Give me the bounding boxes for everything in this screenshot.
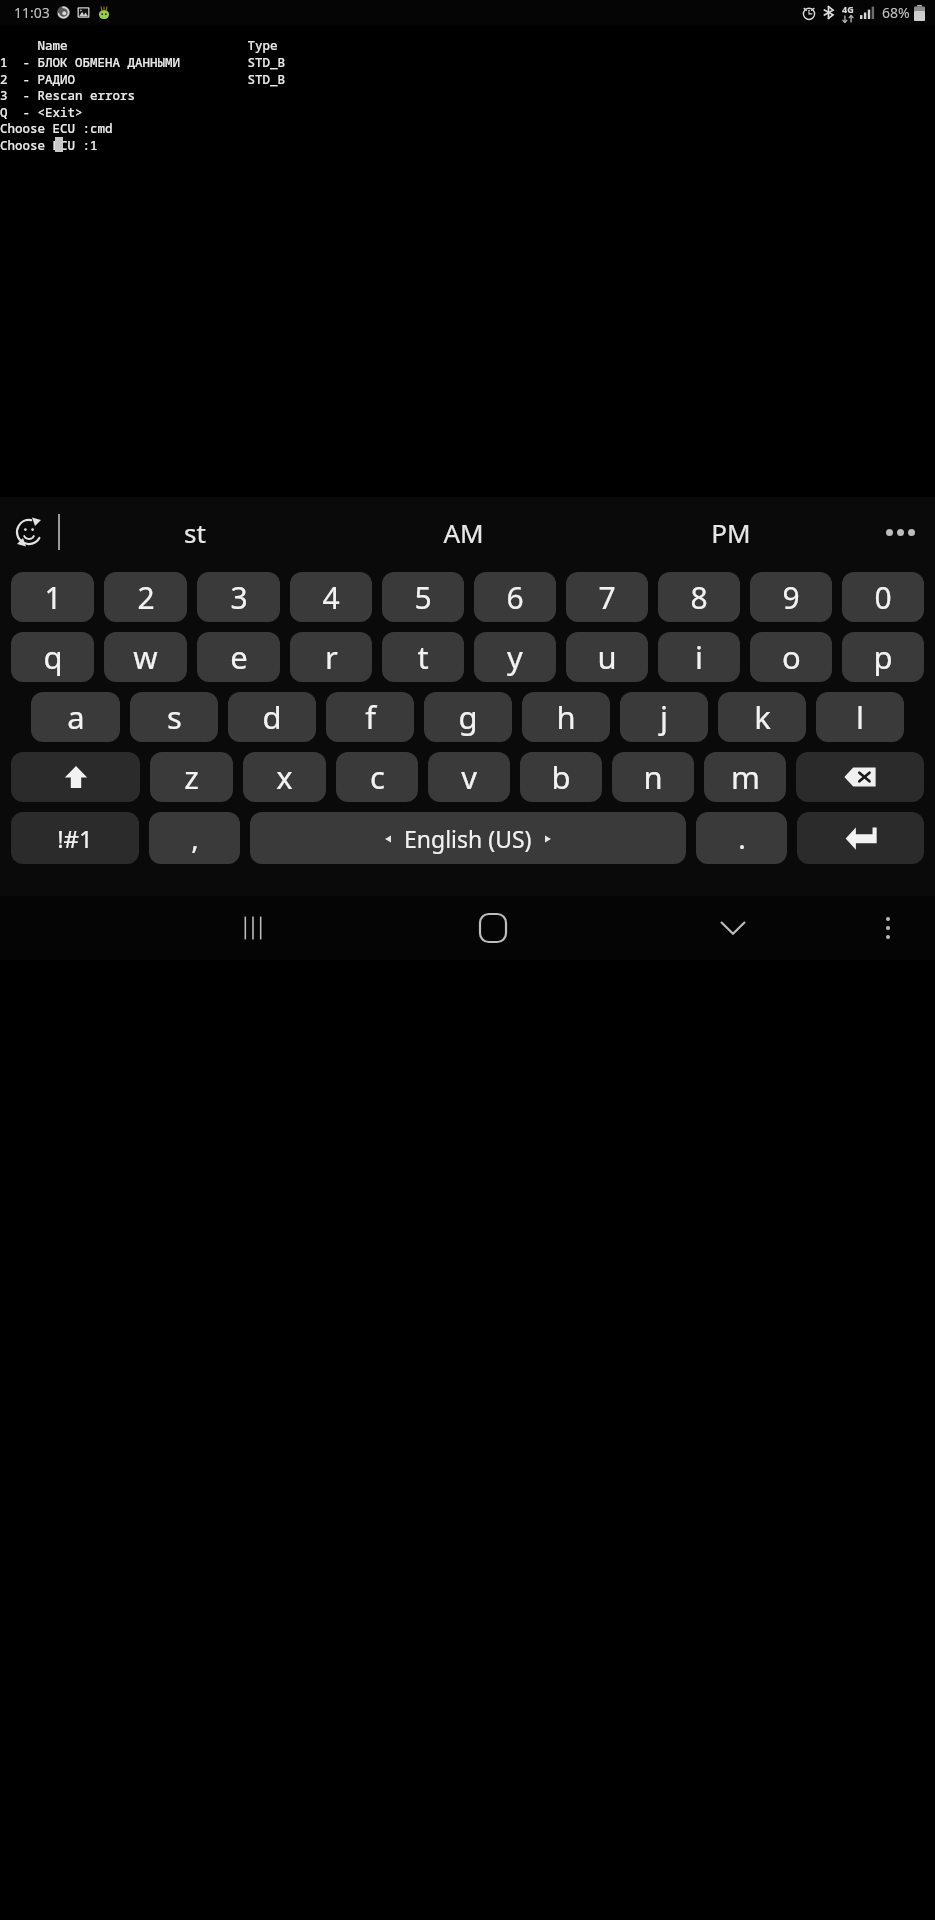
staticText: s <box>167 696 182 738</box>
button[interactable]: p <box>842 632 924 682</box>
staticText: l <box>856 696 864 738</box>
staticText: x <box>276 756 293 798</box>
button[interactable]: 6 <box>474 572 556 622</box>
staticText: 1 - БЛОК ОБМЕНА ДАННЫМИ <box>0 54 181 71</box>
button[interactable]: Emoji and settings <box>0 497 58 567</box>
button[interactable]: e <box>197 632 280 682</box>
staticText: k <box>754 696 771 738</box>
button[interactable]: English (US) <box>250 812 686 864</box>
button[interactable]: v <box>428 752 510 802</box>
button[interactable]: More options <box>865 497 935 567</box>
staticText: . <box>738 819 746 857</box>
button[interactable]: 0 <box>842 572 924 622</box>
staticText: Type <box>0 37 278 54</box>
button[interactable]: z <box>150 752 233 802</box>
staticText: e <box>230 636 248 678</box>
staticText: , <box>191 819 199 857</box>
button[interactable]: 5 <box>382 572 464 622</box>
button[interactable]: Recent apps <box>133 896 373 960</box>
staticText: Q - <Exit> <box>0 104 83 121</box>
button[interactable]: t <box>382 632 464 682</box>
staticText: n <box>643 756 663 798</box>
staticText: STD_B <box>0 71 286 88</box>
staticText: 9 <box>782 577 800 618</box>
button[interactable]: k <box>718 692 806 742</box>
staticText: d <box>262 696 282 738</box>
staticText: 1 <box>44 577 62 618</box>
button[interactable]: 3 <box>197 572 280 622</box>
staticText: AM <box>443 515 484 550</box>
staticText: Choose ECU :cmd <box>0 120 113 137</box>
staticText: z <box>184 756 199 798</box>
button[interactable]: o <box>750 632 832 682</box>
staticText: w <box>133 636 158 678</box>
staticText: j <box>660 696 668 738</box>
staticText: q <box>43 636 63 678</box>
staticText: t <box>417 636 429 678</box>
staticText: 8 <box>690 577 708 618</box>
button[interactable]: h <box>522 692 610 742</box>
button[interactable]: b <box>520 752 602 802</box>
button[interactable]: n <box>612 752 694 802</box>
button[interactable]: . <box>696 812 787 864</box>
staticText: 2 - РАДИО <box>0 71 76 88</box>
button[interactable]: d <box>228 692 316 742</box>
staticText: v <box>461 756 477 798</box>
button[interactable]: y <box>474 632 556 682</box>
button[interactable]: 4 <box>290 572 372 622</box>
staticText: g <box>458 696 478 738</box>
staticText: STD_B <box>0 54 286 71</box>
button[interactable]: 7 <box>566 572 648 622</box>
button[interactable]: x <box>243 752 326 802</box>
staticText: c <box>370 756 385 798</box>
staticText: m <box>731 756 760 798</box>
button[interactable]: u <box>566 632 648 682</box>
button[interactable]: st <box>60 497 329 567</box>
button[interactable]: PM <box>597 497 865 567</box>
button[interactable]: g <box>424 692 512 742</box>
staticText: 11:03 <box>14 3 50 22</box>
button[interactable]: s <box>130 692 218 742</box>
staticText: y <box>507 636 523 678</box>
button[interactable]: i <box>658 632 740 682</box>
staticText: Choose ECU :1 <box>0 137 98 154</box>
button[interactable]: More <box>853 896 923 960</box>
button[interactable]: !#1 <box>11 812 139 864</box>
staticText: 2 <box>137 577 155 618</box>
button[interactable]: w <box>104 632 187 682</box>
button[interactable]: , <box>149 812 240 864</box>
staticText: i <box>695 636 703 678</box>
staticText: o <box>782 636 801 678</box>
staticText: r <box>325 636 338 678</box>
staticText: English (US) <box>404 823 532 854</box>
button[interactable]: c <box>336 752 418 802</box>
button[interactable]: m <box>704 752 786 802</box>
button[interactable]: f <box>326 692 414 742</box>
staticText: 3 <box>230 577 248 618</box>
staticText: u <box>597 636 617 678</box>
button[interactable]: Backspace <box>796 752 924 802</box>
button[interactable]: j <box>620 692 708 742</box>
button[interactable]: Home <box>373 896 613 960</box>
button[interactable]: 9 <box>750 572 832 622</box>
button[interactable]: Shift <box>11 752 140 802</box>
staticText: 0 <box>874 577 892 618</box>
staticText: 4 <box>322 577 340 618</box>
button[interactable]: AM <box>329 497 597 567</box>
button[interactable]: r <box>290 632 372 682</box>
staticText: Name <box>0 37 68 54</box>
staticText: f <box>365 696 376 738</box>
staticText: 7 <box>598 577 616 618</box>
staticText: 3 - Rescan errors <box>0 87 136 104</box>
staticText: h <box>556 696 576 738</box>
staticText: 6 <box>506 577 524 618</box>
button[interactable]: 1 <box>11 572 94 622</box>
button[interactable]: l <box>816 692 904 742</box>
button[interactable]: Hide keyboard <box>613 896 853 960</box>
button[interactable]: Enter <box>797 812 924 864</box>
button[interactable]: a <box>31 692 120 742</box>
staticText: PM <box>711 515 751 550</box>
button[interactable]: q <box>11 632 94 682</box>
button[interactable]: 8 <box>658 572 740 622</box>
button[interactable]: 2 <box>104 572 187 622</box>
